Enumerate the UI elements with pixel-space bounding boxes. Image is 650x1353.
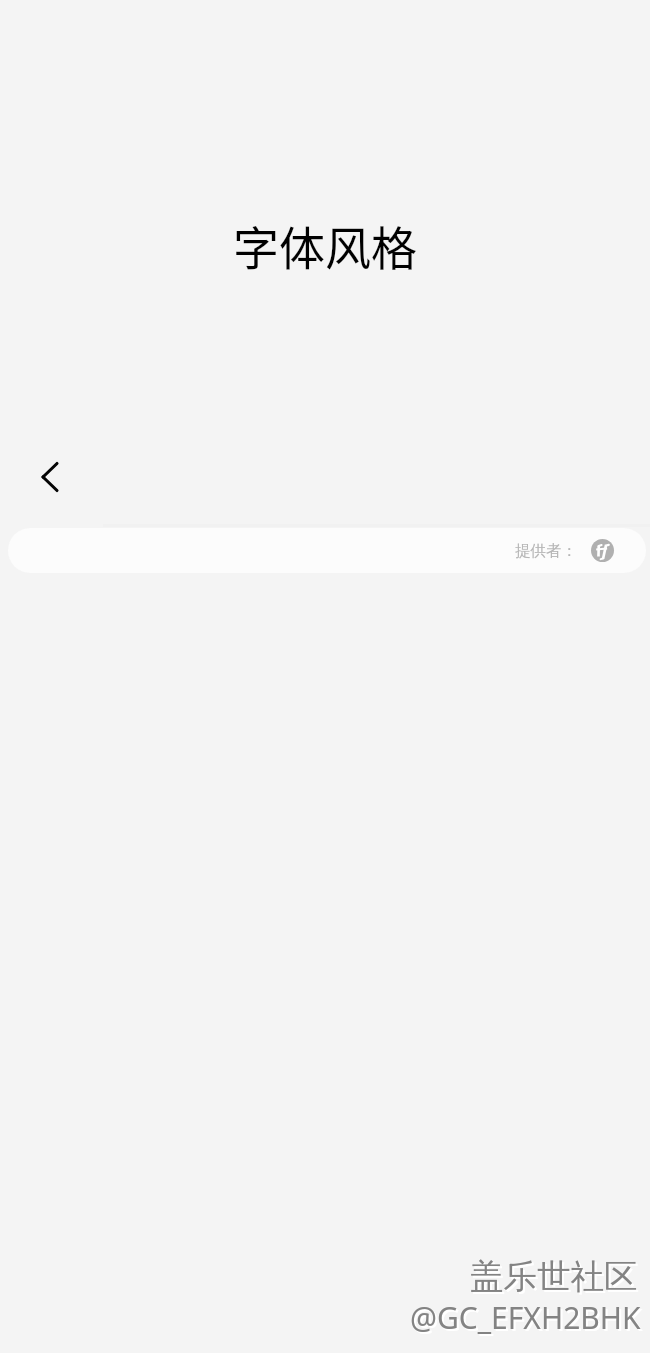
button[interactable]: Back xyxy=(20,455,64,499)
staticText: 盖乐世社区 xyxy=(472,1258,640,1300)
staticText: @GC_EFXH2BHK xyxy=(412,1299,643,1340)
staticText: 字体风格 xyxy=(0,212,650,279)
staticText: 提供者： xyxy=(515,541,577,561)
staticText: @GC_EFXH2BHK xyxy=(410,1297,641,1338)
staticText: 盖乐世社区 xyxy=(470,1256,638,1298)
button[interactable]: 提供者： xyxy=(8,528,646,573)
button[interactable]: Font provider xyxy=(591,539,614,562)
